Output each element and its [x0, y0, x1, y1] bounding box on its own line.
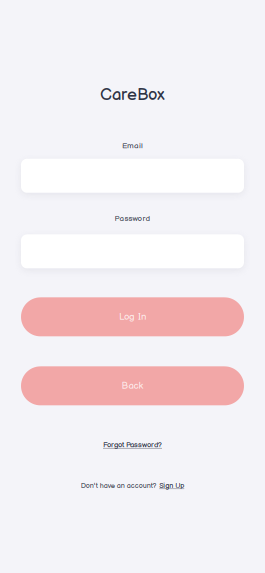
staticText: CareBox	[100, 85, 165, 105]
button[interactable]: Don't have an account?	[81, 481, 184, 490]
staticText: Forgot Password?	[103, 440, 162, 449]
staticText: Email	[122, 141, 143, 151]
staticText: Don't have an account?	[81, 481, 157, 490]
staticText: Password	[114, 214, 150, 223]
staticText: Back	[121, 380, 143, 392]
button[interactable]: Forgot Password?	[103, 440, 162, 449]
button[interactable]: Log In	[21, 297, 244, 336]
staticText: Log In	[119, 311, 146, 323]
staticText: Sign Up	[159, 481, 184, 490]
button[interactable]: Back	[21, 366, 244, 405]
